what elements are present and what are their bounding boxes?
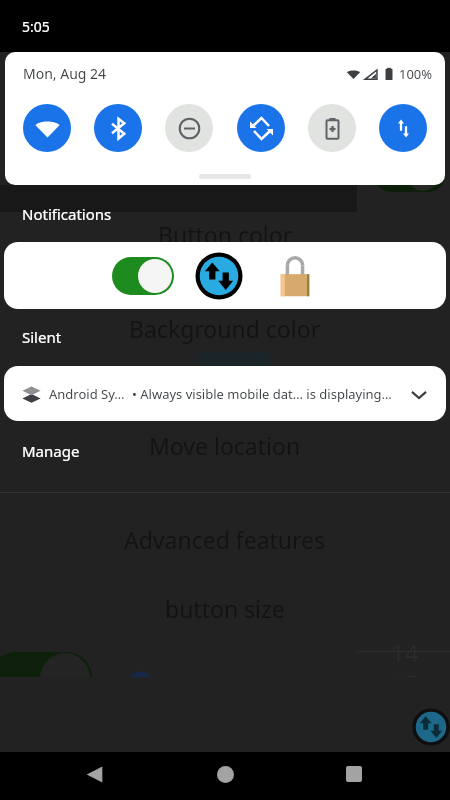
staticText: Move location: [149, 430, 301, 461]
staticText: • Always visible mobile dat… is displayi…: [132, 385, 392, 403]
button[interactable]: Bluetooth: [94, 104, 142, 152]
staticText: 5:05: [22, 17, 50, 36]
staticText: Background color: [129, 313, 321, 344]
button[interactable]: Manage: [22, 441, 80, 461]
button[interactable]: Expand: [406, 381, 432, 407]
staticText: Silent: [22, 327, 62, 347]
staticText: Button color: [158, 219, 293, 250]
button[interactable]: Mobile data: [379, 104, 427, 152]
button[interactable]: Do not disturb: [165, 104, 213, 152]
staticText: Notifications: [22, 204, 112, 224]
button[interactable]: Auto rotate: [237, 104, 285, 152]
staticText: Advanced features: [124, 524, 326, 555]
staticText: Android Sy…: [49, 385, 125, 403]
button[interactable]: Back: [70, 750, 118, 798]
button[interactable]: Battery saver: [308, 104, 356, 152]
staticText: 100%: [399, 65, 433, 83]
staticText: Mon, Aug 24: [23, 64, 107, 83]
button[interactable]: Android Sy…: [4, 366, 446, 421]
staticText: 14: [391, 636, 419, 669]
button[interactable]: Toggle: [4, 242, 446, 309]
button[interactable]: Recents: [330, 750, 378, 798]
button[interactable]: Home: [201, 750, 249, 798]
staticText: button size: [165, 593, 285, 624]
button[interactable]: Toggle: [112, 257, 174, 295]
button[interactable]: Wi-Fi: [23, 104, 71, 152]
